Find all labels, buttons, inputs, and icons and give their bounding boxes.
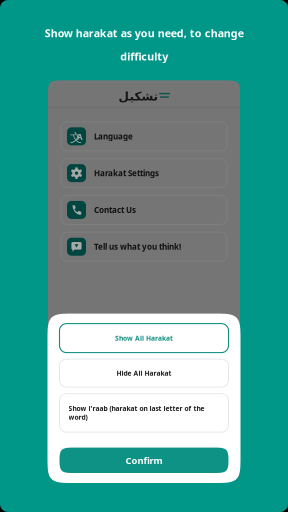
staticText: A <box>77 132 83 142</box>
button[interactable]: Confirm <box>59 448 228 473</box>
staticText: Show i'raab (harakat on last letter of t… <box>68 404 204 422</box>
staticText: Show All Harakat <box>115 334 173 343</box>
button[interactable]: Harakat Settings <box>61 159 227 188</box>
button[interactable]: 文 <box>61 122 227 151</box>
staticText: Harakat Settings <box>94 168 159 178</box>
button[interactable]: Hide All Harakat <box>59 359 228 387</box>
staticText: Confirm <box>125 454 162 466</box>
button[interactable]: Contact Us <box>61 195 227 224</box>
button[interactable]: Show i'raab (harakat on last letter of t… <box>59 394 228 432</box>
button[interactable]: Show All Harakat <box>59 324 228 353</box>
staticText: Show harakat as you need, to change diff… <box>44 26 243 63</box>
staticText: 文 <box>70 130 82 145</box>
staticText: Contact Us <box>94 205 136 215</box>
staticText: Tell us what you think! <box>94 241 181 252</box>
staticText: Hide All Harakat <box>116 369 171 378</box>
staticText: Language <box>94 131 133 142</box>
staticText: تشكيل <box>118 89 158 103</box>
button[interactable]: Tell us what you think! <box>61 232 227 261</box>
